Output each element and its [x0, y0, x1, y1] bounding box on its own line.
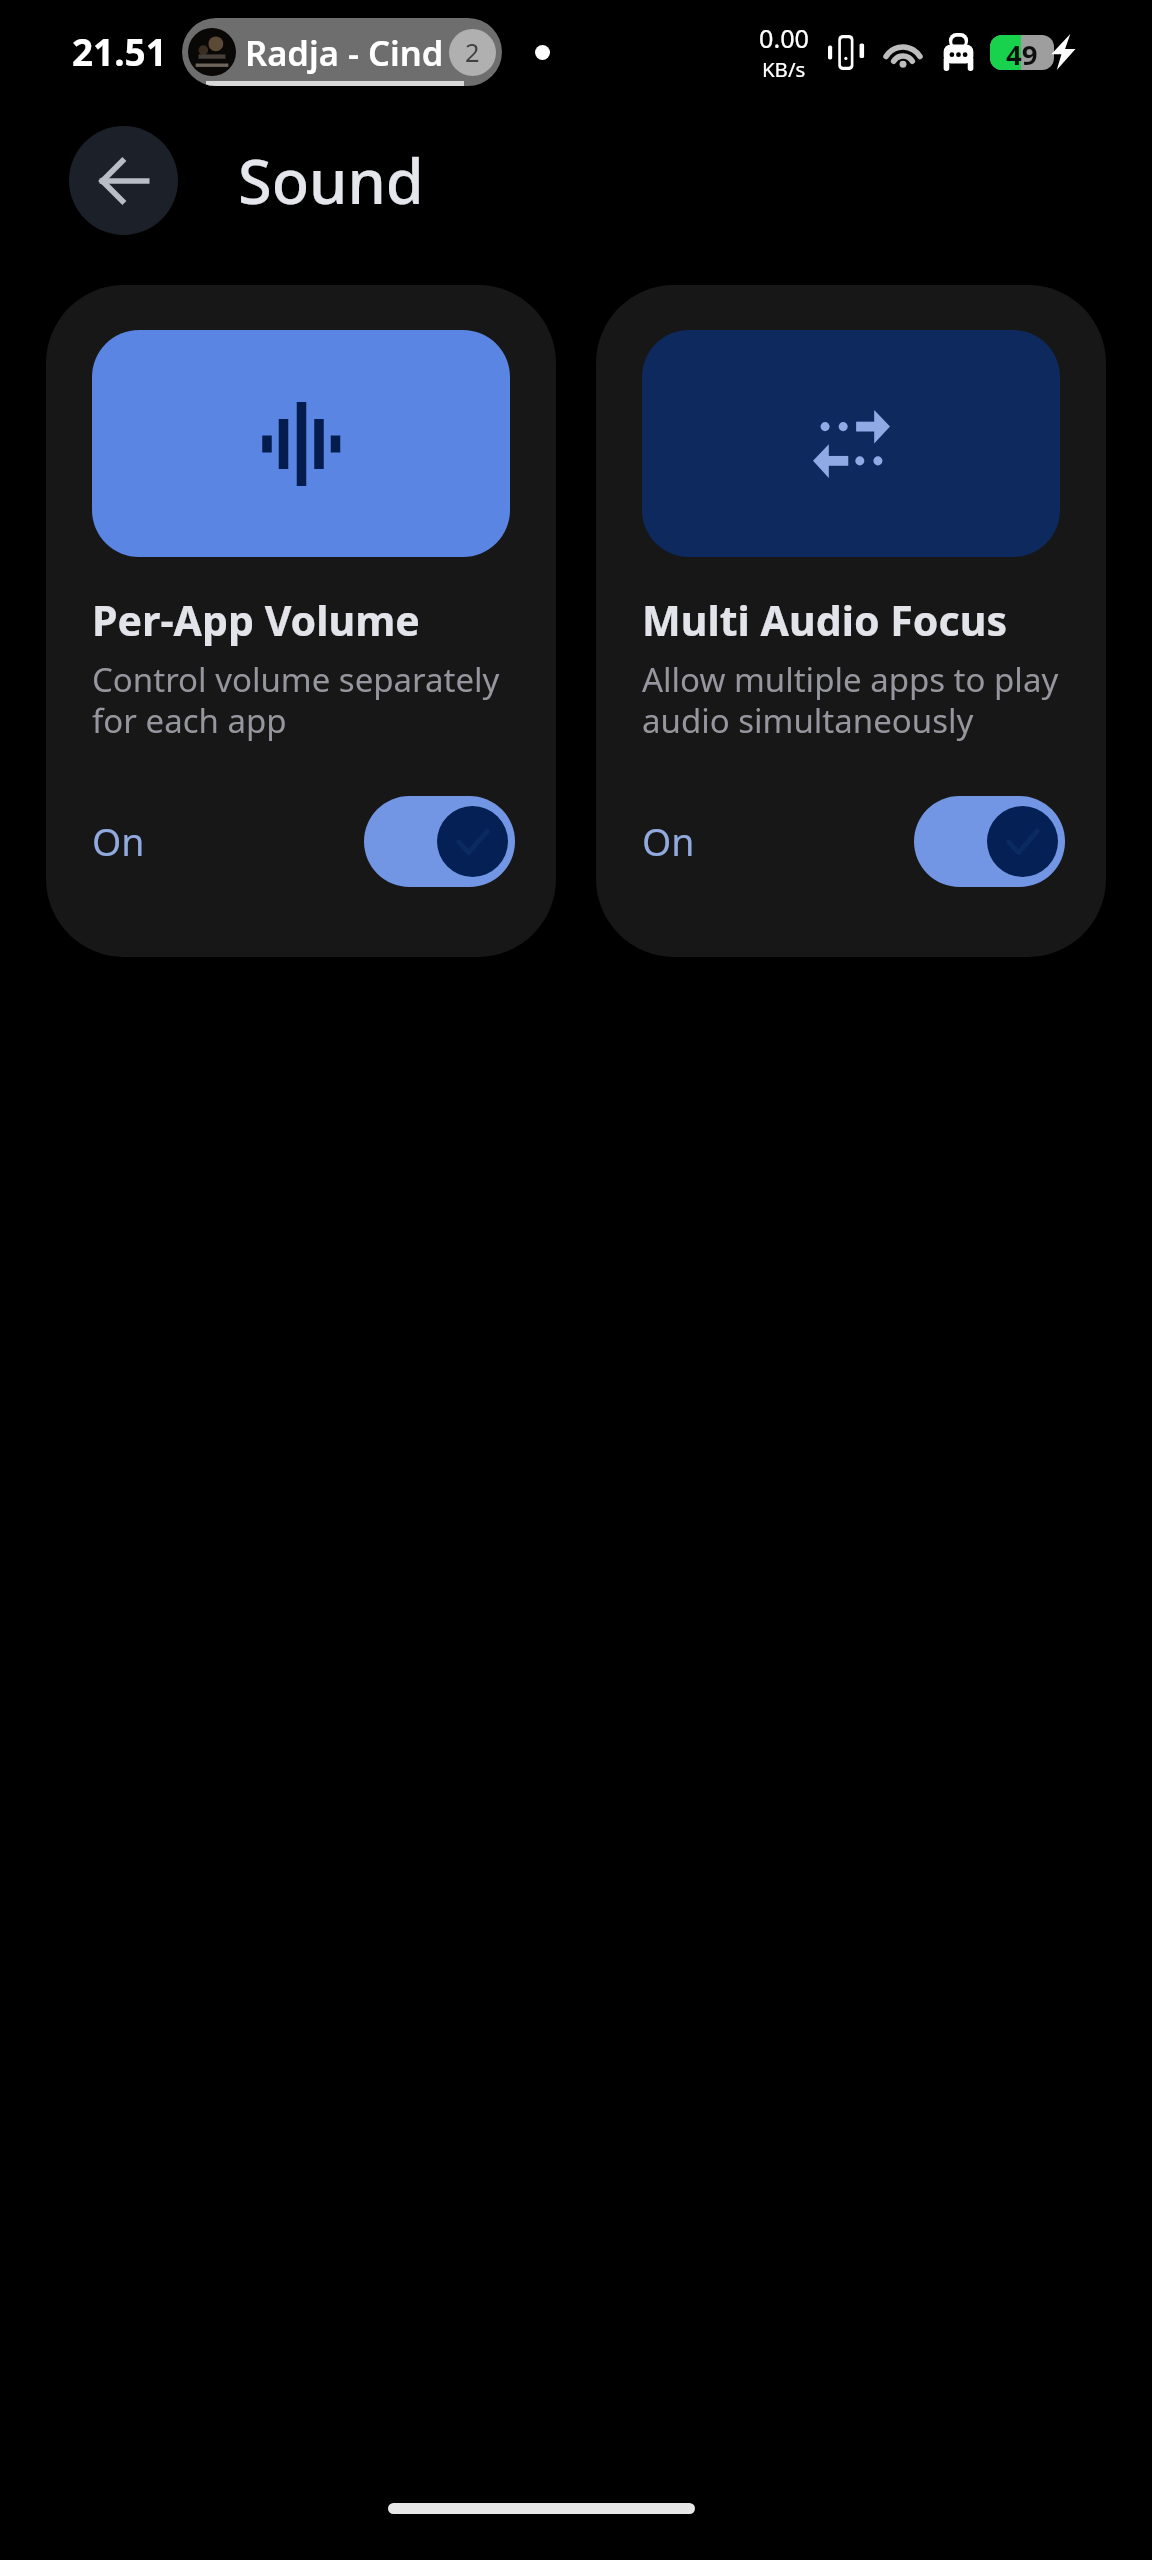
staticText: Per-App Volume — [92, 592, 420, 648]
staticText: 49 — [1006, 35, 1038, 70]
staticText: Control volume separately for each app — [92, 657, 510, 743]
button[interactable]: Toggle — [364, 796, 515, 887]
staticText: Sound — [238, 139, 424, 222]
button[interactable]: Multi Audio Focus — [596, 285, 1106, 957]
button[interactable]: Per-App Volume — [46, 285, 556, 957]
staticText: Radja - Cind — [245, 29, 444, 76]
staticText: On — [92, 816, 145, 867]
staticText: Multi Audio Focus — [642, 592, 1008, 648]
button[interactable]: Back — [69, 126, 178, 235]
staticText: 0.00 — [759, 21, 809, 55]
staticText: On — [642, 816, 695, 867]
staticText: KB/s — [762, 55, 806, 83]
staticText: 21.51 — [72, 27, 167, 77]
staticText: 2 — [465, 35, 480, 70]
button[interactable]: Toggle — [914, 796, 1065, 887]
staticText: Allow multiple apps to play audio simult… — [642, 657, 1060, 743]
